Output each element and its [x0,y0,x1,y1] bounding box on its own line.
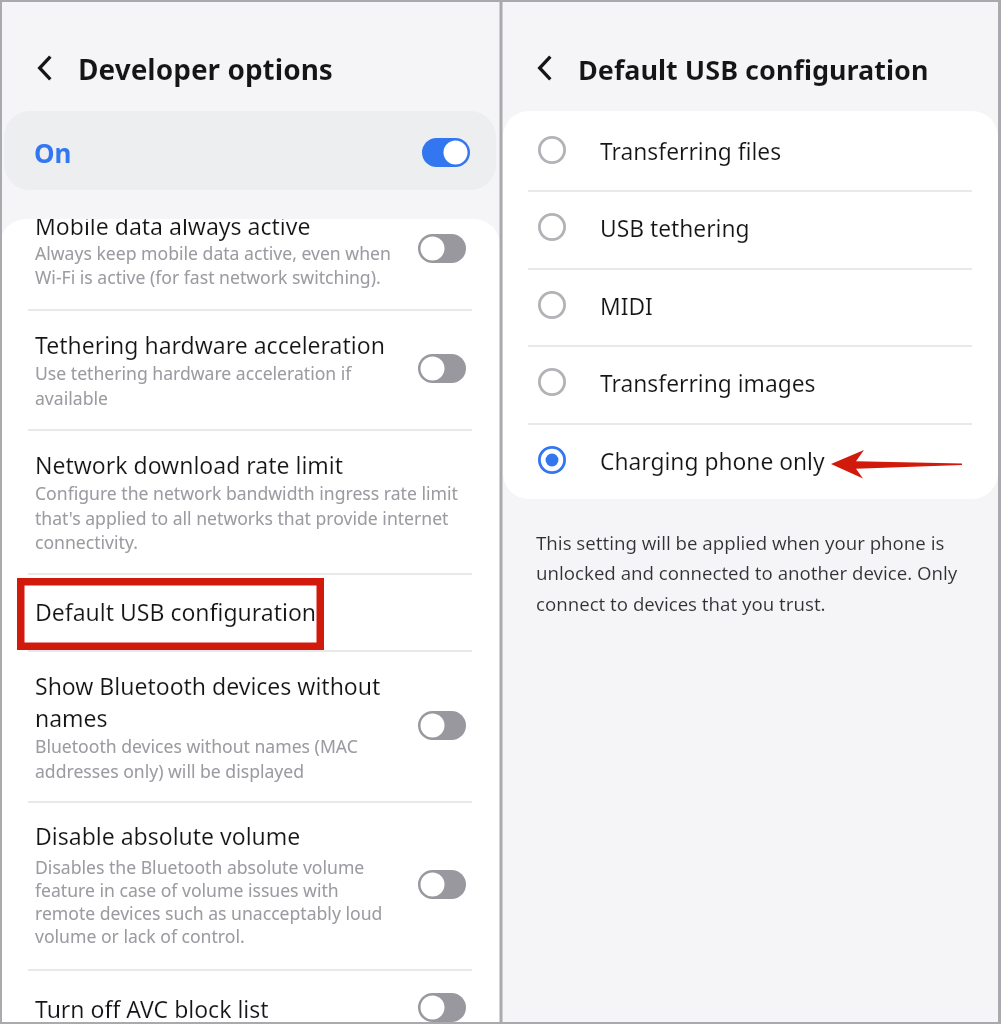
staticText: unlocked and connected to another device… [536,560,958,585]
staticText: available [35,386,108,410]
staticText: Default USB configuration [35,596,317,627]
button[interactable]: On [4,111,496,190]
button[interactable]: MIDI [503,266,998,344]
button[interactable]: Show Bluetooth devices without [0,650,500,801]
staticText: that's applied to all networks that prov… [35,506,449,530]
staticText: Default USB configuration [578,51,929,88]
staticText: names [35,702,108,733]
staticText: MIDI [600,291,653,322]
staticText: USB tethering [600,213,750,244]
button[interactable]: Back [24,46,66,90]
button[interactable]: Default USB configuration [0,573,500,650]
staticText: Transferring files [600,136,782,167]
staticText: Configure the network bandwidth ingress … [35,481,458,505]
staticText: Turn off AVC block list [35,993,269,1024]
button[interactable]: Back [524,46,566,90]
button[interactable]: Transferring images [503,343,998,421]
staticText: Network download rate limit [35,449,344,480]
staticText: Tethering hardware acceleration [35,329,385,360]
staticText: This setting will be applied when your p… [536,530,945,555]
staticText: volume or lack of control. [35,924,245,948]
staticText: Transferring images [600,368,816,399]
staticText: Developer options [78,50,333,88]
staticText: Wi-Fi is active (for fast network switch… [35,265,381,289]
staticText: On [34,135,72,170]
button[interactable]: Network download rate limit [0,429,500,573]
staticText: Disables the Bluetooth absolute volume [35,855,365,879]
staticText: Mobile data always active [35,219,311,241]
staticText: addresses only) will be displayed [35,759,305,783]
button[interactable]: Tethering hardware acceleration [0,309,500,429]
staticText: Always keep mobile data active, even whe… [35,241,391,265]
staticText: Charging phone only [600,446,825,477]
staticText: Bluetooth devices without names (MAC [35,734,358,758]
staticText: Disable absolute volume [35,820,301,851]
staticText: connect to devices that you trust. [536,591,826,616]
button[interactable]: Disable absolute volume [0,801,500,969]
staticText: feature in case of volume issues with [35,878,339,902]
button[interactable]: Transferring files [503,111,998,189]
staticText: connectivity. [35,530,138,554]
staticText: Show Bluetooth devices without [35,670,381,701]
button[interactable]: Turn off AVC block list [0,969,500,1024]
button[interactable]: Charging phone only [503,421,998,499]
button[interactable]: USB tethering [503,188,998,266]
button[interactable]: Mobile data always active [0,219,500,309]
staticText: Use tethering hardware acceleration if [35,361,352,385]
staticText: remote devices such as unacceptably loud [35,901,383,925]
